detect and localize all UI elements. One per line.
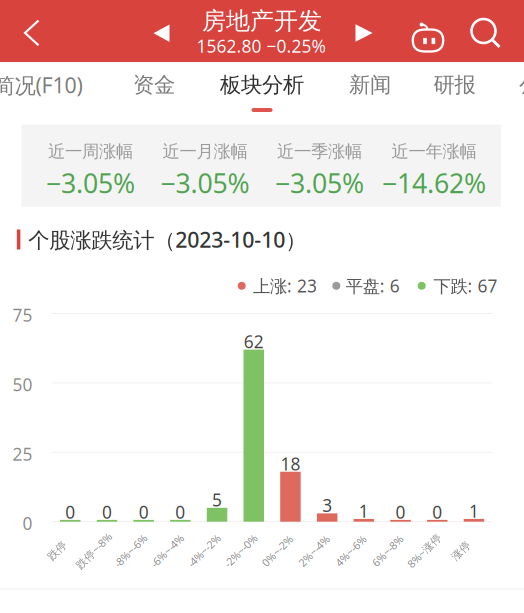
staticText: 1 [359, 499, 369, 522]
button[interactable]: 简况(F10) [0, 64, 88, 118]
staticText: 研报 [433, 72, 475, 98]
button[interactable]: 研报 [404, 64, 504, 118]
staticText: 近一月涨幅 [163, 141, 248, 162]
button[interactable]: Next sector [346, 11, 382, 55]
staticText: 2%~-4% [295, 544, 334, 558]
staticText: 0 [139, 500, 149, 523]
staticText: −14.62% [382, 165, 486, 201]
staticText: -8%~-6% [110, 544, 152, 558]
staticText: 下跌: 67 [433, 274, 497, 297]
button[interactable]: 新闻 [320, 64, 420, 118]
staticText: −3.05% [275, 165, 364, 201]
staticText: 1562.80 −0.25% [196, 34, 325, 57]
staticText: 50 [12, 373, 32, 396]
staticText: 0 [175, 500, 185, 523]
button[interactable]: 公司大事 [511, 64, 524, 118]
staticText: 1 [469, 499, 479, 522]
button[interactable]: Search [463, 11, 509, 57]
staticText: −3.05% [46, 165, 135, 201]
staticText: 房地产开发 [202, 6, 322, 36]
button[interactable]: 板块分析 [212, 64, 312, 118]
staticText: 75 [12, 304, 32, 327]
staticText: 资金 [133, 72, 175, 98]
staticText: 新闻 [349, 72, 391, 98]
staticText: 5 [212, 488, 222, 511]
staticText: 简况(F10) [0, 71, 82, 99]
staticText: 0 [22, 512, 32, 535]
staticText: 近一周涨幅 [48, 141, 133, 162]
staticText: 近一季涨幅 [277, 141, 362, 162]
staticText: 0%~-2% [258, 544, 297, 558]
staticText: 涨停 [450, 544, 472, 557]
staticText: 板块分析 [220, 72, 304, 98]
staticText: 4%~-6% [331, 544, 370, 558]
staticText: 0 [396, 500, 406, 523]
staticText: 跌停~-8% [71, 544, 117, 558]
staticText: 个股涨跌统计（2023-10-10） [28, 225, 306, 254]
button[interactable]: 资金 [104, 64, 204, 118]
staticText: 8%~涨停 [403, 544, 446, 558]
staticText: -6%~-4% [146, 544, 188, 558]
staticText: 62 [244, 330, 264, 353]
staticText: 0 [102, 500, 112, 523]
staticText: 6%~-8% [368, 544, 407, 558]
button[interactable]: Previous sector [143, 11, 179, 55]
staticText: 上涨: 23 [253, 274, 317, 297]
staticText: 跌停 [46, 544, 68, 557]
button[interactable]: Back [4, 5, 60, 61]
staticText: 25 [12, 442, 32, 465]
staticText: -4%~-2% [183, 544, 225, 558]
staticText: 平盘: 6 [346, 274, 400, 297]
staticText: 3 [322, 494, 332, 517]
staticText: 18 [280, 452, 300, 475]
staticText: 公司大事 [519, 72, 524, 98]
staticText: −3.05% [160, 165, 249, 201]
staticText: 0 [65, 500, 75, 523]
button[interactable]: Assistant [405, 12, 451, 58]
staticText: 0 [432, 500, 442, 523]
staticText: 近一年涨幅 [392, 141, 477, 162]
staticText: -2%~-0% [220, 544, 262, 558]
